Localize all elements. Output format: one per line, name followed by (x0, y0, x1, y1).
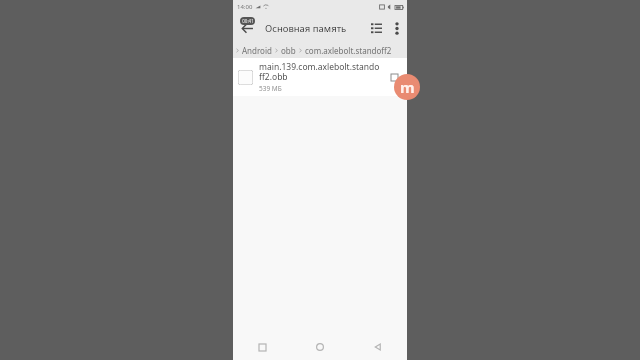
staticText: Android (242, 45, 272, 56)
button[interactable]: main.139.com.axlebolt.standoff2.obb (233, 58, 407, 96)
staticText: 14:00 (237, 3, 253, 11)
staticText: main.139.com.axlebolt.standoff2.obb (259, 61, 382, 82)
staticText: Основная память (265, 22, 347, 35)
button[interactable]: Back (235, 16, 259, 40)
staticText: m (400, 77, 415, 97)
staticText: obb (281, 45, 296, 56)
button[interactable]: obb (280, 45, 297, 56)
button[interactable]: Android (241, 45, 273, 56)
button[interactable]: Home (291, 334, 349, 360)
button[interactable]: Back (349, 334, 407, 360)
staticText: com.axlebolt.standoff2 (305, 45, 392, 56)
staticText: 00:41 (242, 18, 254, 24)
button[interactable]: Select file (386, 69, 402, 85)
staticText: 539 МБ (259, 84, 282, 93)
button[interactable]: More options (387, 18, 407, 38)
button[interactable]: com.axlebolt.standoff2 (304, 45, 393, 56)
button[interactable]: View as list (365, 17, 387, 39)
button[interactable]: Recents (233, 334, 291, 360)
